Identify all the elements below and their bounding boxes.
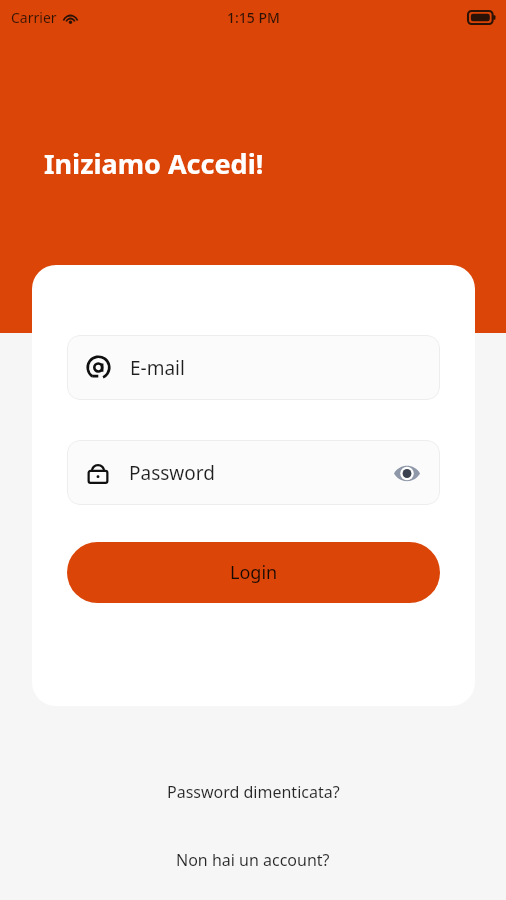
button[interactable]: Show password (390, 456, 424, 490)
staticText: Iniziamo Accedi! (44, 145, 264, 182)
staticText: E-mail (130, 355, 185, 381)
staticText: Non hai un account? (176, 849, 330, 871)
button[interactable]: Login (67, 542, 440, 603)
staticText: Carrier (11, 8, 57, 27)
staticText: Password (129, 460, 215, 486)
button[interactable]: E-mail (67, 335, 440, 400)
button[interactable]: Password (67, 440, 440, 505)
staticText: Password dimenticata? (167, 781, 340, 803)
staticText: 1:15 PM (227, 8, 280, 27)
button[interactable]: Password dimenticata? (153, 775, 354, 809)
staticText: Login (230, 560, 278, 585)
button[interactable]: Non hai un account? (162, 843, 344, 877)
